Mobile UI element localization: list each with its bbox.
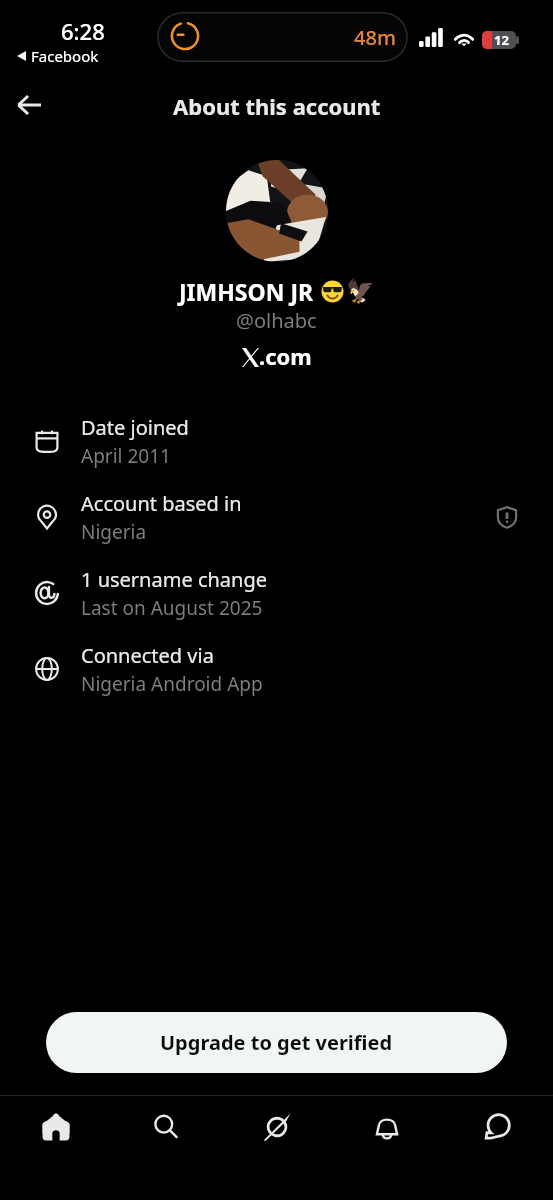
staticText: 6:28 [61,16,105,46]
staticText: 48m [354,24,396,51]
staticText: JIMHSON JR [179,276,314,307]
staticText: 🦅 [346,278,375,305]
staticText: Nigeria Android App [81,671,263,697]
button[interactable]: Notifications [357,1096,417,1152]
staticText: .com [259,341,312,371]
button[interactable]: Connected via [0,631,553,707]
button[interactable]: Search [136,1096,196,1152]
button[interactable]: Back [5,81,53,129]
button[interactable]: Date joined [0,403,553,479]
staticText: Facebook [31,46,99,66]
staticText: April 2011 [81,443,171,469]
button[interactable]: Home [26,1096,86,1152]
button[interactable]: Messages [467,1096,527,1152]
staticText: Account based in [81,490,242,517]
staticText: 1 username change [81,566,267,593]
button[interactable]: Grok [247,1096,307,1152]
button[interactable]: Account based in [0,479,553,555]
staticText: Upgrade to get verified [160,1029,393,1056]
staticText: @olhabc [236,307,317,334]
staticText: About this account [173,91,381,121]
button[interactable]: 1 username change [0,555,553,631]
button[interactable]: Upgrade to get verified [46,1012,507,1073]
staticText: Date joined [81,414,189,441]
button[interactable]: Account info [490,500,524,534]
staticText: Nigeria [81,519,147,545]
staticText: Last on August 2025 [81,595,263,621]
staticText: Connected via [81,642,214,669]
staticText: 12 [494,31,509,49]
